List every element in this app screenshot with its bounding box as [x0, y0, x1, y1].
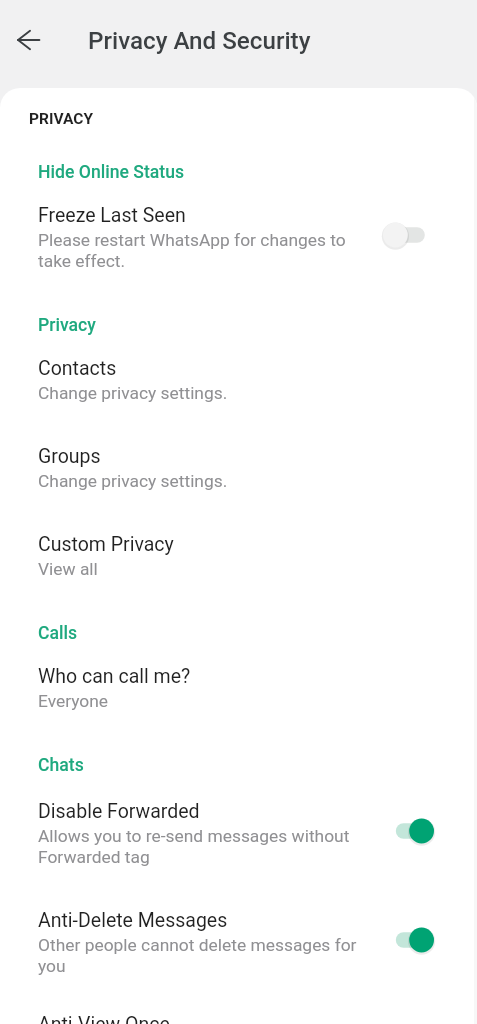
- button[interactable]: Privacy: [0, 307, 477, 343]
- staticText: Please restart WhatsApp for changes to: [38, 230, 346, 250]
- staticText: Groups: [38, 445, 101, 468]
- staticText: Privacy: [38, 315, 96, 336]
- staticText: Other people cannot delete messages for: [38, 935, 357, 955]
- button[interactable]: [0, 794, 477, 873]
- staticText: Contacts: [38, 357, 117, 380]
- staticText: Change privacy settings.: [38, 471, 228, 491]
- staticText: Privacy And Security: [88, 27, 311, 55]
- staticText: Hide Online Status: [38, 162, 185, 183]
- staticText: Disable Forwarded: [38, 800, 200, 823]
- staticText: you: [38, 956, 66, 976]
- button[interactable]: [0, 660, 477, 718]
- button[interactable]: Calls: [0, 615, 477, 651]
- button[interactable]: Freeze Last Seen, off: [383, 222, 434, 248]
- staticText: Custom Privacy: [38, 533, 174, 556]
- staticText: Chats: [38, 755, 84, 776]
- button[interactable]: [0, 351, 477, 409]
- staticText: Calls: [38, 623, 78, 644]
- staticText: Change privacy settings.: [38, 383, 228, 403]
- staticText: take effect.: [38, 251, 126, 271]
- button[interactable]: Anti-Delete Messages, on: [383, 927, 434, 953]
- staticText: Freeze Last Seen: [38, 204, 186, 227]
- button[interactable]: [0, 527, 477, 585]
- button[interactable]: Hide Online Status: [0, 154, 477, 190]
- button[interactable]: [0, 1008, 477, 1024]
- button[interactable]: Navigate back: [5, 16, 53, 64]
- button[interactable]: [0, 198, 477, 277]
- staticText: Anti-Delete Messages: [38, 909, 228, 932]
- staticText: Everyone: [38, 691, 109, 711]
- button[interactable]: [0, 439, 477, 497]
- button[interactable]: Disable Forwarded, on: [383, 818, 434, 844]
- staticText: Anti-View Once: [38, 1013, 170, 1024]
- button[interactable]: Chats: [0, 747, 477, 783]
- staticText: Who can call me?: [38, 665, 191, 688]
- staticText: View all: [38, 559, 98, 579]
- staticText: Allows you to re-send messages without: [38, 826, 350, 846]
- staticText: PRIVACY: [29, 110, 94, 128]
- staticText: Forwarded tag: [38, 847, 150, 867]
- button[interactable]: [0, 903, 477, 982]
